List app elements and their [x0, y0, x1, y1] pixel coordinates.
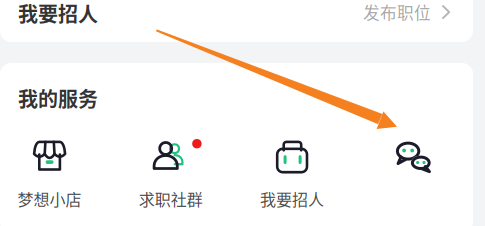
staticText: 梦想小店	[17, 187, 81, 210]
button[interactable]: 梦想小店	[0, 139, 99, 210]
button[interactable]: 求职社群	[121, 139, 221, 210]
button[interactable]: 我的服务	[18, 83, 98, 112]
staticText: 求职社群	[139, 187, 203, 210]
staticText: 发布职位	[363, 0, 431, 24]
staticText: 我要招人	[18, 0, 98, 27]
button[interactable]	[363, 139, 463, 210]
button[interactable]: 我要招人	[0, 0, 473, 42]
staticText: 我要招人	[260, 187, 324, 210]
staticText: 我的服务	[18, 83, 98, 112]
button[interactable]: 我要招人	[242, 139, 342, 210]
